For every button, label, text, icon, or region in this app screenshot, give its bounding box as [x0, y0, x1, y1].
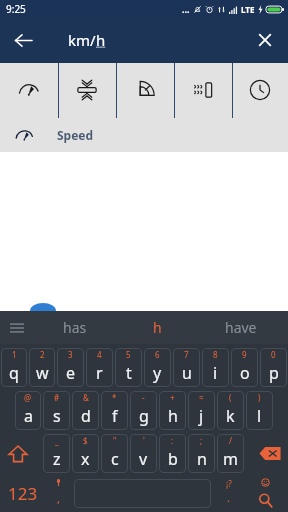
staticText: f — [112, 405, 118, 427]
staticText: j — [199, 405, 204, 427]
staticText: ) — [258, 392, 261, 403]
staticText: z — [53, 448, 61, 470]
staticText: h — [96, 30, 106, 50]
staticText: u — [182, 362, 192, 384]
button[interactable]: Space — [74, 479, 211, 508]
staticText: 6 — [155, 349, 160, 360]
staticText: " — [113, 435, 117, 446]
button[interactable]: ¡? — [213, 477, 244, 510]
staticText: v — [139, 448, 148, 470]
staticText: e — [66, 362, 76, 384]
button[interactable]: @ — [15, 391, 41, 430]
staticText: p — [269, 362, 279, 384]
staticText: - — [142, 392, 145, 403]
button[interactable]: 1 — [1, 348, 27, 387]
button[interactable]: Tab — [58, 62, 116, 118]
button[interactable]: 3 — [57, 348, 84, 387]
staticText: r — [96, 362, 103, 384]
button[interactable]: Voice input — [44, 477, 72, 510]
button[interactable]: Tab — [232, 62, 288, 118]
button[interactable]: ( — [217, 391, 244, 430]
staticText: # — [54, 392, 60, 403]
staticText: LTE — [241, 4, 255, 15]
button[interactable]: $ — [72, 434, 99, 473]
button[interactable]: Back — [6, 23, 40, 57]
button[interactable]: + — [159, 391, 186, 430]
staticText: Speed — [57, 127, 94, 143]
button[interactable]: have — [199, 311, 282, 344]
staticText: = — [199, 392, 204, 403]
staticText: ( — [229, 392, 232, 403]
staticText: 4 — [97, 349, 102, 360]
staticText: ; — [200, 435, 203, 446]
button[interactable]: 123 — [2, 477, 44, 510]
staticText: + — [170, 392, 175, 403]
staticText: d — [81, 405, 91, 427]
button[interactable]: Speed — [0, 118, 288, 152]
button[interactable]: 5 — [115, 348, 142, 387]
staticText: ... — [182, 3, 190, 15]
staticText: m — [223, 448, 238, 470]
button[interactable]: - — [130, 391, 157, 430]
button[interactable]: # — [43, 391, 70, 430]
button[interactable]: = — [188, 391, 215, 430]
staticText: y — [153, 362, 162, 384]
staticText: i — [213, 362, 218, 384]
staticText: ' — [143, 435, 145, 446]
staticText: 1 — [12, 349, 17, 360]
staticText: 9 — [242, 349, 247, 360]
button[interactable]: Backspace — [252, 434, 287, 473]
button[interactable]: 6 — [144, 348, 171, 387]
staticText: & — [83, 392, 89, 403]
staticText: b — [168, 448, 178, 470]
staticText: h — [153, 318, 162, 337]
button[interactable]: Close — [248, 23, 282, 57]
button[interactable]: Tab — [0, 62, 58, 118]
staticText: @ — [24, 392, 32, 403]
staticText: o — [240, 362, 250, 384]
button[interactable]: 4 — [86, 348, 113, 387]
staticText: 3 — [68, 349, 73, 360]
button[interactable]: & — [72, 391, 99, 430]
button[interactable]: Search — [244, 477, 286, 510]
staticText: , — [57, 491, 60, 506]
staticText: a — [24, 405, 33, 427]
button[interactable]: Shift — [1, 434, 35, 473]
staticText: . — [227, 490, 230, 505]
button[interactable]: 2 — [29, 348, 55, 387]
staticText: c — [111, 448, 119, 470]
button[interactable]: 8 — [202, 348, 229, 387]
staticText: k — [226, 405, 235, 427]
staticText: 9:25 — [6, 2, 26, 16]
staticText: 123 — [8, 482, 38, 505]
staticText: * — [112, 392, 117, 403]
button[interactable]: 7 — [173, 348, 200, 387]
button[interactable]: Tab — [116, 62, 174, 118]
button[interactable]: " — [101, 434, 128, 473]
button[interactable]: / — [217, 434, 244, 473]
button[interactable]: 0 — [260, 348, 287, 387]
staticText: 8 — [213, 349, 218, 360]
button[interactable]: Keyboard menu — [4, 315, 30, 341]
button[interactable]: Tab — [174, 62, 232, 118]
staticText: ¡? — [226, 478, 232, 489]
staticText: $ — [83, 435, 88, 446]
staticText: _ — [55, 435, 59, 446]
staticText: w — [36, 362, 49, 384]
staticText: h — [168, 405, 178, 427]
button[interactable]: ' — [130, 434, 157, 473]
staticText: has — [63, 318, 87, 337]
button[interactable]: ; — [188, 434, 215, 473]
button[interactable]: * — [101, 391, 128, 430]
button[interactable]: ) — [246, 391, 273, 430]
button[interactable]: _ — [43, 434, 70, 473]
staticText: s — [53, 405, 61, 427]
button[interactable]: has — [34, 311, 116, 344]
staticText: have — [225, 318, 257, 337]
staticText: 7 — [184, 349, 189, 360]
staticText: t — [126, 362, 132, 384]
button[interactable]: 9 — [231, 348, 258, 387]
button[interactable]: h — [116, 311, 199, 344]
button[interactable]: : — [159, 434, 186, 473]
staticText: g — [139, 405, 149, 427]
